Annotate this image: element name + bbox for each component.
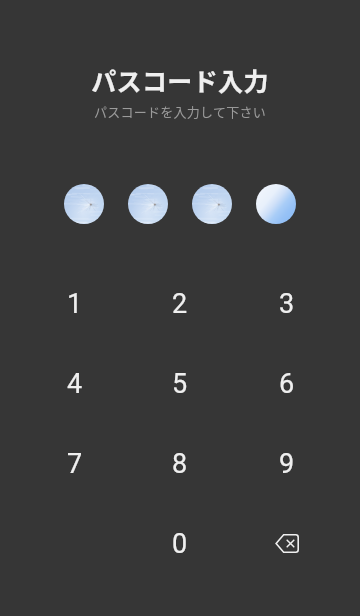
staticText: 2 [172, 288, 188, 320]
button[interactable]: 2 [127, 264, 233, 344]
button[interactable]: 8 [127, 424, 233, 504]
button[interactable]: Backspace [234, 504, 340, 584]
button[interactable]: 0 [127, 504, 233, 584]
button[interactable]: 9 [234, 424, 340, 504]
button[interactable]: 4 [22, 344, 128, 424]
staticText: 1 [67, 288, 83, 320]
button[interactable]: 5 [127, 344, 233, 424]
staticText: 0 [172, 528, 188, 560]
button[interactable]: 3 [234, 264, 340, 344]
staticText: パスコード入力 [0, 62, 360, 98]
staticText: 3 [279, 288, 295, 320]
staticText: パスコードを入力して下さい [0, 102, 360, 121]
staticText: 8 [172, 448, 188, 480]
button[interactable]: 6 [234, 344, 340, 424]
button[interactable]: 1 [22, 264, 128, 344]
staticText: 7 [67, 448, 83, 480]
staticText: 6 [279, 368, 295, 400]
staticText: 5 [172, 368, 188, 400]
staticText: 9 [279, 448, 295, 480]
staticText: 4 [67, 368, 83, 400]
button[interactable]: 7 [22, 424, 128, 504]
